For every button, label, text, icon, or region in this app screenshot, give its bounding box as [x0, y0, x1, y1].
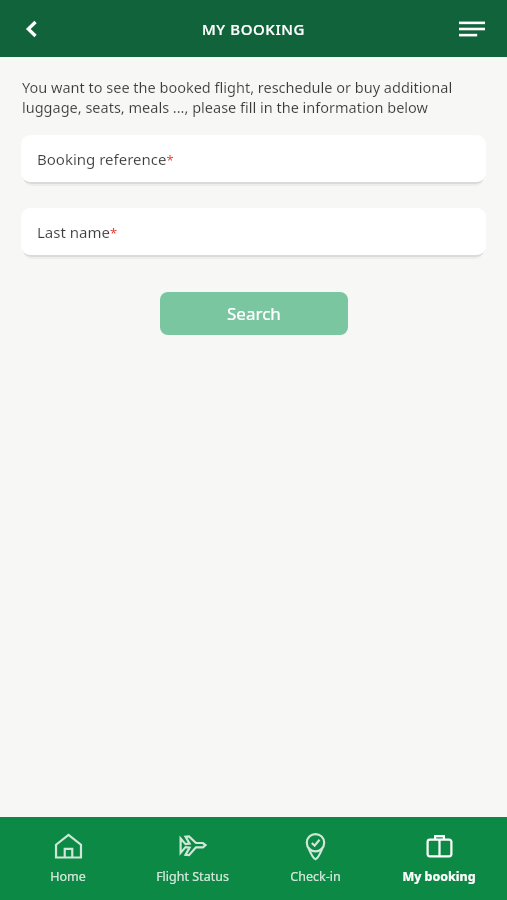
staticText: Flight Status	[156, 868, 229, 885]
staticText: MY BOOKING	[202, 19, 306, 39]
button[interactable]: Check-in	[260, 826, 370, 891]
button[interactable]: My booking	[384, 826, 494, 891]
staticText: Home	[50, 868, 86, 885]
staticText: Last name*	[37, 222, 118, 242]
staticText: Check-in	[290, 868, 341, 885]
button[interactable]: Home	[13, 826, 123, 891]
staticText: You want to see the booked flight, resch…	[22, 77, 487, 117]
button[interactable]: Booking reference*	[21, 135, 486, 182]
button[interactable]: Search	[160, 292, 348, 335]
button[interactable]: Menu	[449, 6, 495, 52]
staticText: My booking	[402, 868, 476, 885]
button[interactable]: Last name*	[21, 208, 486, 255]
staticText: Search	[227, 302, 281, 325]
button[interactable]: Back	[8, 5, 56, 53]
button[interactable]: Flight Status	[137, 826, 247, 891]
staticText: Booking reference*	[37, 149, 174, 169]
